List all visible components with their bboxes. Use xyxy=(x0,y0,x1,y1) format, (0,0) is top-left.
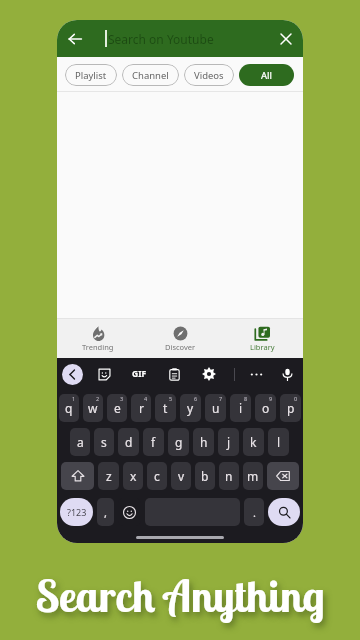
staticText: n xyxy=(225,468,233,484)
staticText: t xyxy=(163,400,168,416)
button[interactable]: All xyxy=(239,64,294,86)
staticText: y xyxy=(187,400,194,416)
staticText: 7 xyxy=(219,395,223,402)
button[interactable]: x xyxy=(123,462,143,490)
button[interactable]: o xyxy=(255,394,276,422)
staticText: Playlist xyxy=(75,69,107,82)
staticText: u xyxy=(212,400,220,416)
button[interactable]: u xyxy=(205,394,226,422)
button[interactable]: w xyxy=(83,394,103,422)
staticText: a xyxy=(77,434,84,450)
staticText: 9 xyxy=(269,395,273,402)
button[interactable]: Emoji xyxy=(118,498,141,526)
button[interactable]: ?123 xyxy=(60,498,93,526)
staticText: 4 xyxy=(144,395,148,402)
button[interactable]: i xyxy=(230,394,251,422)
staticText: q xyxy=(65,400,73,416)
button[interactable]: j xyxy=(218,428,239,456)
staticText: m xyxy=(247,468,259,484)
button[interactable]: Search xyxy=(268,498,300,526)
staticText: 8 xyxy=(244,395,248,402)
button[interactable]: Clipboard xyxy=(163,363,185,385)
button[interactable]: t xyxy=(155,394,176,422)
staticText: o xyxy=(262,400,270,416)
button[interactable]: Shift xyxy=(61,462,94,490)
button[interactable]: Voice input xyxy=(276,363,298,385)
staticText: j xyxy=(227,434,231,450)
button[interactable]: s xyxy=(94,428,114,456)
button[interactable]: Clear search xyxy=(274,27,298,51)
staticText: 5 xyxy=(169,395,173,402)
staticText: 3 xyxy=(120,395,124,402)
button[interactable]: r xyxy=(131,394,151,422)
staticText: Trending xyxy=(82,342,114,352)
staticText: z xyxy=(106,468,112,484)
button[interactable]: p xyxy=(280,394,301,422)
staticText: c xyxy=(154,468,160,484)
button[interactable]: b xyxy=(195,462,215,490)
staticText: f xyxy=(151,434,156,450)
button[interactable]: Back xyxy=(62,26,88,52)
staticText: Videos xyxy=(194,69,224,82)
staticText: All xyxy=(261,69,272,82)
button[interactable]: Library xyxy=(221,319,303,358)
staticText: Library xyxy=(250,342,275,352)
staticText: Search Anything xyxy=(35,568,325,623)
button[interactable]: Playlist xyxy=(65,64,117,86)
button[interactable]: d xyxy=(118,428,139,456)
button[interactable]: Trending xyxy=(57,319,139,358)
staticText: v xyxy=(178,468,185,484)
staticText: x xyxy=(130,468,137,484)
button[interactable]: h xyxy=(193,428,214,456)
button[interactable]: . xyxy=(244,498,264,526)
button[interactable]: q xyxy=(59,394,79,422)
staticText: . xyxy=(253,505,256,520)
button[interactable]: Backspace xyxy=(267,462,299,490)
staticText: Search on Youtube xyxy=(108,31,214,47)
button[interactable]: Back xyxy=(62,364,83,385)
staticText: 2 xyxy=(96,395,100,402)
button[interactable]: Stickers xyxy=(93,363,115,385)
staticText: b xyxy=(201,468,209,484)
button[interactable]: Channel xyxy=(122,64,179,86)
button[interactable]: l xyxy=(268,428,289,456)
button[interactable]: f xyxy=(143,428,164,456)
button[interactable]: n xyxy=(219,462,239,490)
button[interactable]: e xyxy=(107,394,127,422)
staticText: r xyxy=(139,400,144,416)
staticText: ?123 xyxy=(67,506,87,518)
staticText: , xyxy=(104,505,107,520)
button[interactable]: m xyxy=(243,462,263,490)
button[interactable]: GIF xyxy=(128,363,150,385)
button[interactable]: v xyxy=(171,462,191,490)
button[interactable]: z xyxy=(98,462,119,490)
button[interactable]: a xyxy=(70,428,90,456)
staticText: Channel xyxy=(132,69,169,82)
button[interactable]: More xyxy=(245,363,267,385)
staticText: g xyxy=(175,434,183,450)
staticText: 0 xyxy=(294,395,298,402)
staticText: 6 xyxy=(194,395,198,402)
button[interactable]: k xyxy=(243,428,264,456)
staticText: h xyxy=(200,434,208,450)
staticText: d xyxy=(125,434,133,450)
staticText: k xyxy=(250,434,257,450)
button[interactable]: Discover xyxy=(139,319,221,358)
button[interactable]: , xyxy=(97,498,114,526)
staticText: l xyxy=(277,434,281,450)
staticText: GIF xyxy=(132,368,147,380)
staticText: 1 xyxy=(72,395,76,402)
staticText: Discover xyxy=(165,342,196,352)
staticText: w xyxy=(88,400,98,416)
button[interactable]: c xyxy=(147,462,167,490)
button[interactable]: Videos xyxy=(184,64,234,86)
button[interactable]: g xyxy=(168,428,189,456)
button[interactable]: y xyxy=(180,394,201,422)
button[interactable]: Settings xyxy=(198,363,220,385)
staticText: i xyxy=(239,400,243,416)
staticText: e xyxy=(114,400,121,416)
staticText: s xyxy=(101,434,107,450)
staticText: p xyxy=(287,400,295,416)
